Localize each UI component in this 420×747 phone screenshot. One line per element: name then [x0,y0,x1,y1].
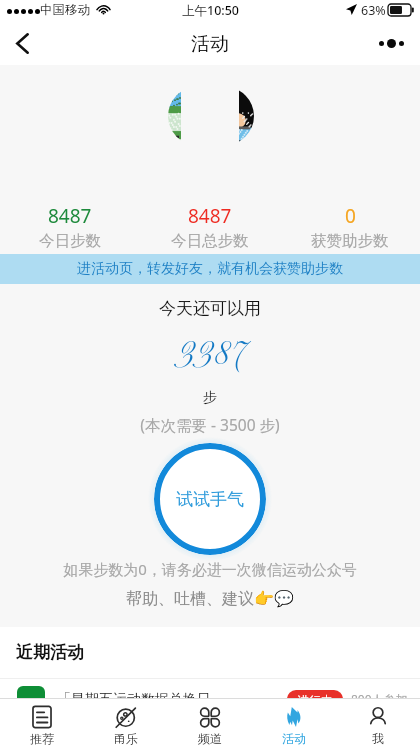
button[interactable]: 推荐 [0,699,84,747]
staticText: 试试手气 [176,489,244,510]
button[interactable]: 频道 [168,699,252,747]
button[interactable]: 活动 [252,699,336,747]
button[interactable]: More options [372,22,420,65]
staticText: 活动 [282,731,306,746]
staticText: 今日步数 [39,231,101,251]
staticText: 频道 [198,731,222,746]
staticText: 8487 [188,203,232,229]
staticText: 今日总步数 [171,231,249,251]
staticText: 上午10:50 [182,2,240,19]
staticText: 「星期五运动数据兑换日」 [57,691,225,698]
button[interactable]: Back [0,22,45,65]
staticText: 8487 [48,203,92,229]
button[interactable]: 0 [280,203,420,251]
staticText: 帮助、吐槽、建议👉💬 [0,589,420,609]
staticText: 如果步数为0，请务必进一次微信运动公众号 [0,559,420,579]
button[interactable]: 甬乐 [84,699,168,747]
button[interactable]: 8487 [0,203,140,251]
button[interactable]: 进活动页，转发好友，就有机会获赞助步数 [0,254,420,284]
staticText: 今天还可以用 [0,298,420,319]
staticText: 甬乐 [114,731,138,746]
button[interactable]: Friend avatar [168,87,181,145]
staticText: 近期活动 [16,642,84,663]
button[interactable]: 「星期五运动数据兑换日」 [0,686,420,698]
staticText: 63% [361,2,386,19]
staticText: 我 [372,731,384,746]
staticText: 进活动页，转发好友，就有机会获赞助步数 [77,260,343,278]
staticText: 0 [345,203,356,229]
button[interactable]: Friend avatar [239,87,254,145]
button[interactable]: 我 [336,699,420,747]
staticText: 推荐 [30,731,54,746]
staticText: 中国移动 [40,2,90,18]
staticText: 活动 [191,32,229,56]
staticText: 3387 [0,337,420,376]
staticText: 800人参加 [351,691,408,698]
staticText: 步 [0,389,420,407]
button[interactable]: 8487 [140,203,280,251]
staticText: (本次需要 - 3500 步) [0,414,420,435]
staticText: 进行中 [297,693,333,698]
staticText: 获赞助步数 [311,231,389,251]
button[interactable]: 试试手气 [154,443,266,555]
